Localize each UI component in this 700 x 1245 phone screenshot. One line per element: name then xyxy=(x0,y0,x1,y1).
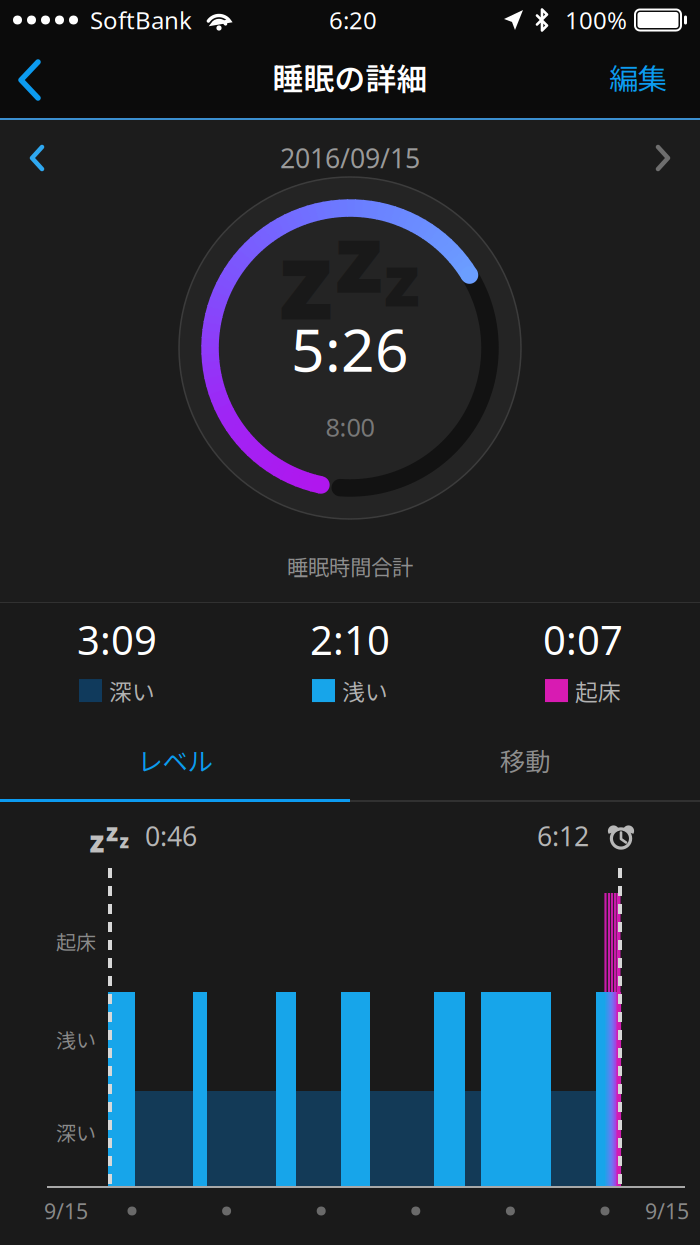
staticText: 編集 xyxy=(609,56,667,98)
staticText: SoftBank xyxy=(90,4,192,36)
staticText: z xyxy=(89,821,104,860)
staticText: z xyxy=(279,207,333,349)
staticText: 移動 xyxy=(500,742,550,778)
staticText: z xyxy=(119,829,128,853)
staticText: z xyxy=(106,816,118,848)
staticText: レベル xyxy=(137,742,212,778)
button[interactable]: レベル xyxy=(0,729,350,791)
button[interactable]: Previous day xyxy=(0,130,76,186)
staticText: 100% xyxy=(565,4,627,36)
staticText: 0:07 xyxy=(543,613,623,666)
staticText: 9/15 xyxy=(645,1197,689,1225)
button[interactable]: Back xyxy=(0,41,64,119)
staticText: 浅い xyxy=(56,1024,96,1053)
button[interactable]: Next day xyxy=(624,130,700,186)
button[interactable]: 移動 xyxy=(350,729,700,791)
staticText: 0:46 xyxy=(145,818,197,854)
staticText: 3:09 xyxy=(77,613,157,666)
staticText: 起床 xyxy=(575,674,621,707)
staticText: 9/15 xyxy=(44,1197,88,1225)
staticText: 睡眠の詳細 xyxy=(272,55,427,99)
staticText: z xyxy=(335,193,383,319)
staticText: 深い xyxy=(109,674,155,707)
staticText: 8:00 xyxy=(325,410,374,444)
staticText: 6:12 xyxy=(537,818,589,854)
staticText: 2:10 xyxy=(310,613,390,666)
button[interactable]: 編集 xyxy=(593,39,683,121)
staticText: 起床 xyxy=(56,926,96,955)
staticText: 6:20 xyxy=(329,4,377,36)
staticText: 浅い xyxy=(342,674,388,707)
staticText: 2016/09/15 xyxy=(280,140,420,176)
staticText: 睡眠時間合計 xyxy=(287,551,413,581)
staticText: z xyxy=(384,232,420,326)
staticText: 5:26 xyxy=(291,310,409,388)
staticText: 深い xyxy=(56,1117,96,1146)
